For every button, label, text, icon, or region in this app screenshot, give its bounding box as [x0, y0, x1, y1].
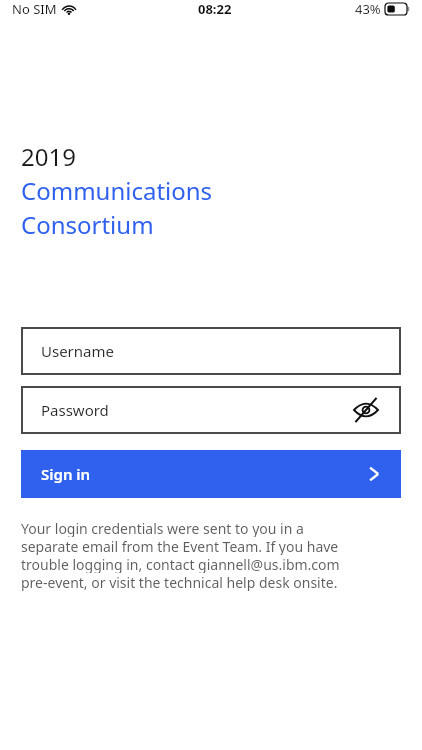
staticText: Consortium: [21, 208, 154, 241]
staticText: 08:22: [198, 0, 232, 18]
staticText: No SIM: [12, 0, 57, 18]
button[interactable]: Username: [21, 327, 401, 375]
staticText: Sign in: [41, 464, 91, 484]
staticText: 43%: [355, 0, 381, 18]
staticText: Password: [41, 400, 109, 420]
button[interactable]: Password: [21, 386, 401, 434]
staticText: Communications: [21, 174, 213, 207]
staticText: separate email from the Event Team. If y…: [21, 537, 339, 555]
staticText: pre-event, or visit the technical help d…: [21, 573, 338, 591]
staticText: 2019: [21, 140, 76, 173]
button[interactable]: Show password: [349, 393, 383, 427]
staticText: Username: [41, 341, 114, 361]
staticText: Your login credentials were sent to you …: [21, 519, 304, 537]
button[interactable]: Sign in: [21, 450, 401, 498]
staticText: trouble logging in, contact giannell@us.…: [21, 555, 340, 573]
